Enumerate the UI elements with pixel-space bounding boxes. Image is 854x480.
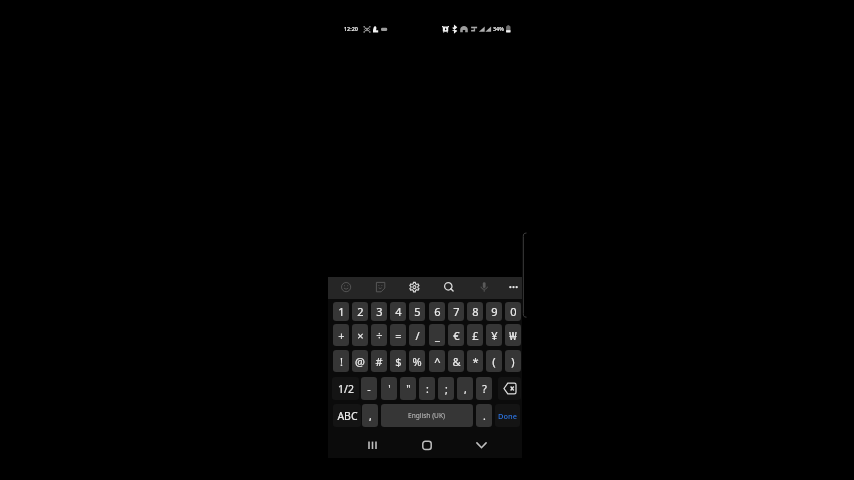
button[interactable]: " [400, 377, 416, 400]
button[interactable]: 8 [467, 302, 483, 321]
button[interactable]: ' [381, 377, 397, 400]
button[interactable]: - [361, 377, 377, 400]
staticText: & [452, 354, 461, 369]
button[interactable]: 3 [371, 302, 387, 321]
button[interactable]: ₩ [505, 324, 521, 346]
staticText: 2 [357, 304, 364, 319]
button[interactable]: # [371, 350, 387, 372]
staticText: 12:20 [344, 25, 358, 32]
button[interactable]: ) [505, 350, 521, 372]
staticText: 9 [491, 304, 498, 319]
staticText: # [375, 354, 383, 369]
staticText: English (UK) [408, 411, 446, 420]
button[interactable]: Home [413, 433, 441, 457]
staticText: - [367, 382, 371, 396]
staticText: ^ [434, 354, 441, 369]
button[interactable]: Keyboard settings [404, 277, 424, 297]
button[interactable]: Recent apps [359, 433, 387, 457]
button[interactable]: 2 [352, 302, 368, 321]
button[interactable]: & [448, 350, 464, 372]
staticText: 0 [510, 304, 517, 319]
button[interactable]: : [419, 377, 435, 400]
staticText: 8 [472, 304, 479, 319]
button[interactable]: ABC [333, 404, 361, 427]
button[interactable]: ( [486, 350, 502, 372]
staticText: _ [435, 328, 440, 343]
button[interactable]: Voice input [474, 277, 494, 297]
button[interactable]: = [390, 324, 406, 346]
button[interactable]: ! [333, 350, 349, 372]
staticText: + [338, 328, 345, 343]
button[interactable]: $ [390, 350, 406, 372]
button[interactable]: More options [504, 277, 524, 297]
button[interactable]: ¥ [486, 324, 502, 346]
button[interactable]: 7 [448, 302, 464, 321]
button[interactable]: ? [476, 377, 492, 400]
staticText: ¥ [491, 328, 498, 343]
staticText: 4 [395, 304, 402, 319]
staticText: $ [395, 354, 402, 369]
staticText: 1/2 [338, 382, 354, 396]
staticText: × [357, 328, 364, 343]
button[interactable]: 4 [390, 302, 406, 321]
button[interactable]: . [476, 404, 492, 427]
staticText: / [415, 328, 420, 343]
staticText: 3 [376, 304, 383, 319]
button[interactable]: 5 [409, 302, 425, 321]
button[interactable]: Emoji [336, 277, 356, 297]
staticText: % [412, 354, 422, 369]
staticText: ₩ [509, 328, 517, 343]
button[interactable]: English (UK) [381, 404, 473, 427]
staticText: ABC [337, 409, 358, 423]
button[interactable]: Done [495, 404, 520, 427]
button[interactable]: / [409, 324, 425, 346]
staticText: £ [472, 328, 479, 343]
staticText: ! [340, 354, 343, 369]
staticText: . [483, 409, 486, 423]
staticText: ' [388, 382, 391, 396]
button[interactable]: , [362, 404, 378, 427]
staticText: " [406, 382, 411, 396]
button[interactable]: ; [438, 377, 454, 400]
staticText: 5 [414, 304, 421, 319]
button[interactable]: % [409, 350, 425, 372]
button[interactable]: Delete [498, 377, 521, 400]
button[interactable]: , [457, 377, 473, 400]
button[interactable]: 6 [429, 302, 445, 321]
button[interactable]: + [333, 324, 349, 346]
staticText: : [426, 382, 429, 396]
staticText: 7 [453, 304, 460, 319]
staticText: , [464, 382, 467, 396]
staticText: 6 [434, 304, 441, 319]
staticText: ; [445, 382, 448, 396]
staticText: Done [498, 411, 517, 421]
staticText: ( [492, 354, 496, 369]
staticText: , [369, 409, 372, 423]
button[interactable]: 1 [333, 302, 349, 321]
button[interactable]: _ [429, 324, 445, 346]
button[interactable]: ÷ [371, 324, 387, 346]
button[interactable]: @ [352, 350, 368, 372]
staticText: * [472, 354, 479, 369]
staticText: 1 [338, 304, 345, 319]
button[interactable]: × [352, 324, 368, 346]
button[interactable]: Hide keyboard [468, 433, 496, 457]
button[interactable]: 1/2 [332, 377, 359, 400]
button[interactable]: € [448, 324, 464, 346]
staticText: ) [511, 354, 515, 369]
button[interactable]: 9 [486, 302, 502, 321]
button[interactable]: ^ [429, 350, 445, 372]
button[interactable]: Search [439, 277, 459, 297]
button[interactable]: * [467, 350, 483, 372]
button[interactable]: Stickers [371, 277, 391, 297]
staticText: 34% [493, 25, 504, 32]
staticText: = [395, 328, 402, 343]
staticText: € [453, 328, 460, 343]
staticText: @ [355, 354, 365, 369]
button[interactable]: £ [467, 324, 483, 346]
staticText: ÷ [376, 328, 383, 343]
button[interactable]: 0 [505, 302, 521, 321]
staticText: ? [482, 382, 487, 396]
